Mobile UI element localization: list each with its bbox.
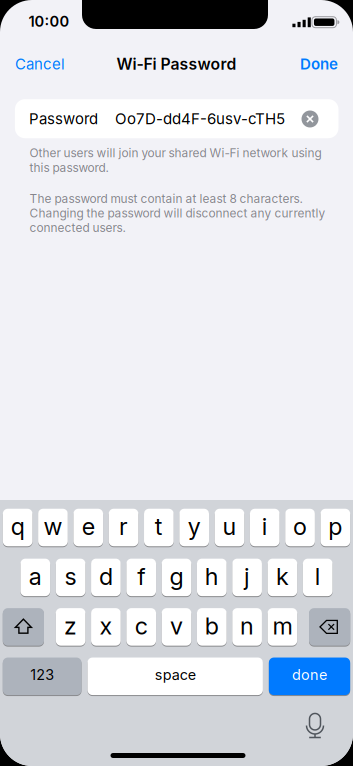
button[interactable]: v [162, 607, 191, 647]
button[interactable]: n [232, 607, 262, 647]
button[interactable]: w [38, 508, 68, 547]
staticText: a [29, 563, 42, 590]
staticText: Done [300, 55, 338, 73]
staticText: connected users. [29, 221, 125, 235]
button[interactable]: t [144, 508, 174, 547]
button[interactable]: f [126, 558, 156, 597]
button[interactable]: Clear text [301, 110, 318, 127]
staticText: i [262, 513, 268, 540]
button[interactable]: Cancel [0, 0, 353, 766]
staticText: space [155, 666, 196, 683]
staticText: done [292, 666, 327, 683]
staticText: f [137, 563, 145, 590]
staticText: o [293, 513, 307, 540]
staticText: n [240, 612, 254, 640]
button[interactable]: j [232, 558, 262, 597]
button[interactable]: c [126, 607, 156, 647]
staticText: Changing the password will disconnect an… [29, 206, 325, 220]
staticText: s [65, 563, 77, 590]
staticText: r [119, 513, 128, 540]
staticText: Cancel [15, 55, 65, 73]
button[interactable]: e [73, 508, 103, 547]
staticText: m [272, 612, 292, 640]
staticText: Password [29, 110, 98, 127]
button[interactable]: o [285, 508, 315, 547]
button[interactable]: z [56, 607, 85, 647]
button[interactable]: Dictation [298, 713, 332, 747]
staticText: this password. [29, 161, 108, 175]
staticText: l [315, 563, 321, 590]
button[interactable]: Password [15, 99, 338, 138]
staticText: y [188, 513, 201, 540]
staticText: p [328, 513, 342, 540]
staticText: Wi-Fi Password [116, 55, 236, 73]
staticText: Other users will join your shared Wi-Fi … [29, 146, 321, 160]
button[interactable]: r [109, 508, 138, 547]
staticText: v [170, 612, 183, 640]
button[interactable]: b [197, 607, 227, 647]
staticText: z [64, 612, 77, 640]
button[interactable]: done [269, 656, 350, 696]
button[interactable]: Done [0, 0, 353, 766]
staticText: k [276, 563, 289, 590]
staticText: h [205, 563, 219, 590]
button[interactable]: space [87, 656, 263, 696]
staticText: x [99, 612, 112, 640]
staticText: d [99, 563, 113, 590]
staticText: c [135, 612, 148, 640]
button[interactable]: u [215, 508, 244, 547]
staticText: g [169, 563, 183, 590]
staticText: Oo7D-dd4F-6usv-cTH5 [115, 110, 285, 128]
button[interactable]: i [250, 508, 280, 547]
staticText: q [11, 513, 25, 540]
staticText: e [82, 513, 95, 540]
button[interactable]: d [91, 558, 121, 597]
button[interactable]: h [197, 558, 227, 597]
staticText: The password must contain at least 8 cha… [29, 192, 302, 206]
button[interactable]: Shift [3, 607, 44, 647]
button[interactable]: s [56, 558, 85, 597]
staticText: 10:00 [28, 13, 69, 30]
staticText: j [244, 563, 250, 590]
button[interactable]: k [268, 558, 297, 597]
button[interactable]: 123 [3, 656, 81, 696]
button[interactable]: l [303, 558, 333, 597]
staticText: b [205, 612, 219, 640]
button[interactable]: x [91, 607, 121, 647]
staticText: t [155, 513, 163, 540]
button[interactable]: m [268, 607, 297, 647]
button[interactable]: g [162, 558, 191, 597]
button[interactable]: Delete [309, 607, 350, 647]
staticText: w [43, 513, 62, 540]
button[interactable]: y [179, 508, 209, 547]
button[interactable]: p [320, 508, 350, 547]
staticText: u [222, 513, 236, 540]
staticText: 123 [30, 666, 54, 683]
button[interactable]: q [3, 508, 32, 547]
button[interactable]: a [20, 558, 50, 597]
